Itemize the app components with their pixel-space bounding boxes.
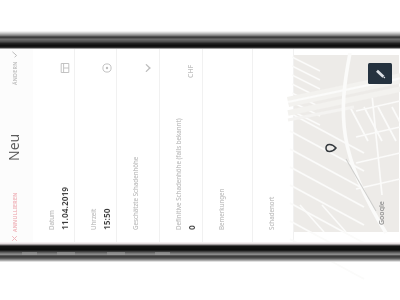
staticText: 0 (186, 225, 197, 230)
button[interactable]: Geschätzte Schadenhöhe (117, 49, 160, 245)
button[interactable]: Bemerkungen (203, 49, 253, 245)
staticText: Neu (4, 133, 23, 161)
button[interactable]: Definitive Schadenhöhe (falls bekannt) (160, 49, 203, 245)
staticText: CHF (186, 64, 196, 78)
staticText: ANNULLIEREN (11, 192, 18, 232)
staticText: Uhrzeit (89, 208, 97, 230)
other: Pick date (60, 63, 70, 73)
staticText: Geschätzte Schadenhöhe (131, 156, 139, 230)
other: Open list (143, 63, 153, 73)
staticText: Bemerkungen (217, 188, 225, 230)
button[interactable]: Edit location (368, 63, 392, 84)
staticText: 15:50 (101, 208, 112, 230)
button[interactable]: Datum (33, 49, 75, 245)
button[interactable]: Map of damage location (294, 55, 399, 232)
other: Pick time (102, 63, 112, 73)
button[interactable]: ANNULLIEREN (7, 191, 22, 243)
button[interactable]: Schadenort (253, 49, 294, 245)
staticText: ÄNDERN (11, 61, 18, 85)
staticText: Schadenort (267, 196, 275, 230)
staticText: Datum (47, 210, 55, 230)
staticText: Google (377, 201, 385, 225)
button[interactable]: Uhrzeit (75, 49, 117, 245)
staticText: Definitive Schadenhöhe (falls bekannt) (174, 118, 182, 230)
button[interactable]: ÄNDERN (7, 50, 22, 86)
staticText: 11.04.2019 (59, 186, 70, 230)
